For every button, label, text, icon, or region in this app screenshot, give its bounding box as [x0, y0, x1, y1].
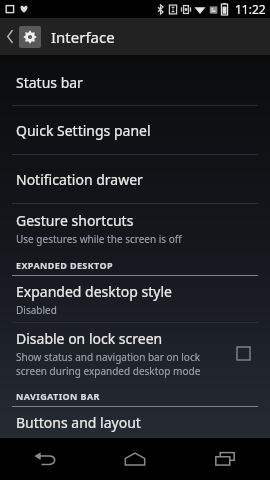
staticText: NAVIGATION BAR: [16, 390, 100, 402]
button[interactable]: Buttons and layout: [0, 407, 270, 438]
button[interactable]: Quick Settings panel: [0, 106, 270, 154]
button[interactable]: Expanded desktop style: [0, 276, 270, 322]
staticText: EXPANDED DESKTOP: [16, 259, 113, 271]
staticText: Interface: [51, 27, 115, 47]
staticText: Status bar: [16, 73, 83, 92]
button[interactable]: Disable on lock screen: [0, 323, 270, 383]
staticText: Gesture shortcuts: [16, 211, 134, 230]
button[interactable]: Back: [0, 438, 90, 480]
button[interactable]: Status bar: [0, 60, 270, 105]
button[interactable]: Navigate up: [0, 18, 270, 55]
button[interactable]: Gesture shortcuts: [0, 204, 270, 252]
staticText: screen during expanded desktop mode: [16, 364, 201, 378]
staticText: Buttons and layout: [16, 413, 141, 432]
button[interactable]: Recent apps: [180, 438, 270, 480]
staticText: Quick Settings panel: [16, 121, 151, 140]
staticText: Notification drawer: [16, 170, 143, 189]
button[interactable]: Notification drawer: [0, 155, 270, 203]
staticText: 11:22: [235, 1, 266, 17]
staticText: Show status and navigation bar on lock: [16, 350, 201, 364]
staticText: Use gestures while the screen is off: [16, 232, 182, 246]
staticText: Disable on lock screen: [16, 329, 163, 348]
staticText: Expanded desktop style: [16, 282, 172, 301]
button[interactable]: Home: [90, 438, 180, 480]
button[interactable]: Disable on lock screen checkbox: [228, 338, 258, 368]
staticText: Disabled: [16, 303, 57, 317]
